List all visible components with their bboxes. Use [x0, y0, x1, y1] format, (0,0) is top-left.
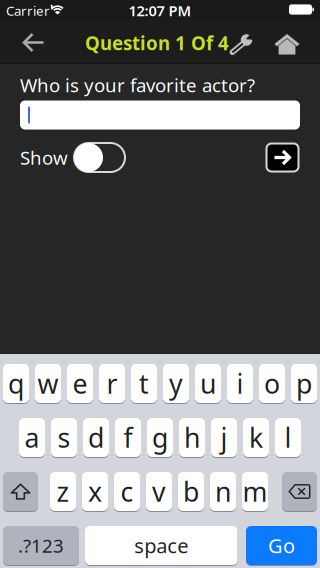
- button[interactable]: c: [114, 471, 140, 511]
- staticText: a: [24, 420, 39, 455]
- staticText: l: [284, 420, 291, 455]
- button[interactable]: Home: [269, 26, 305, 62]
- button[interactable]: t: [131, 363, 157, 403]
- button[interactable]: h: [179, 417, 205, 457]
- staticText: g: [152, 420, 168, 455]
- button[interactable]: n: [210, 471, 236, 511]
- staticText: u: [200, 366, 216, 401]
- staticText: Carrier: [6, 2, 50, 19]
- staticText: o: [264, 366, 280, 401]
- button[interactable]: m: [242, 471, 268, 511]
- staticText: z: [56, 474, 69, 509]
- button[interactable]: space: [85, 525, 237, 565]
- staticText: r: [106, 366, 117, 401]
- button[interactable]: q: [3, 363, 29, 403]
- button[interactable]: Show answer toggle: [73, 142, 126, 173]
- staticText: m: [242, 474, 267, 509]
- button[interactable]: u: [195, 363, 221, 403]
- staticText: w: [37, 366, 58, 401]
- button[interactable]: Go: [246, 525, 317, 565]
- button[interactable]: z: [50, 471, 76, 511]
- button[interactable]: y: [163, 363, 189, 403]
- staticText: e: [72, 366, 87, 401]
- button[interactable]: Answer text field: [20, 100, 300, 129]
- staticText: f: [123, 420, 132, 455]
- staticText: Show: [20, 145, 68, 170]
- button[interactable]: Settings: [225, 26, 259, 62]
- button[interactable]: a: [19, 417, 45, 457]
- button[interactable]: Delete: [282, 471, 317, 511]
- staticText: b: [183, 474, 199, 509]
- button[interactable]: x: [82, 471, 108, 511]
- staticText: p: [296, 366, 312, 401]
- button[interactable]: g: [147, 417, 173, 457]
- button[interactable]: w: [35, 363, 61, 403]
- staticText: k: [249, 420, 263, 455]
- staticText: q: [8, 366, 24, 401]
- button[interactable]: b: [178, 471, 204, 511]
- button[interactable]: v: [146, 471, 172, 511]
- button[interactable]: s: [51, 417, 77, 457]
- staticText: y: [169, 366, 183, 401]
- button[interactable]: j: [211, 417, 237, 457]
- staticText: h: [184, 420, 200, 455]
- staticText: t: [139, 366, 149, 401]
- staticText: Who is your favorite actor?: [20, 73, 255, 97]
- button[interactable]: o: [259, 363, 285, 403]
- button[interactable]: Back: [13, 22, 53, 62]
- button[interactable]: e: [67, 363, 93, 403]
- button[interactable]: i: [227, 363, 253, 403]
- button[interactable]: Shift: [3, 471, 38, 511]
- button[interactable]: Next question: [265, 142, 299, 172]
- button[interactable]: Numbers: [3, 525, 79, 565]
- staticText: x: [88, 474, 102, 509]
- button[interactable]: f: [115, 417, 141, 457]
- staticText: v: [152, 474, 166, 509]
- button[interactable]: l: [275, 417, 301, 457]
- staticText: space: [134, 532, 188, 559]
- button[interactable]: d: [83, 417, 109, 457]
- button[interactable]: r: [99, 363, 125, 403]
- staticText: c: [120, 474, 133, 509]
- staticText: i: [236, 366, 243, 401]
- button[interactable]: k: [243, 417, 269, 457]
- staticText: j: [220, 420, 227, 455]
- staticText: n: [215, 474, 231, 509]
- staticText: .?123: [18, 533, 64, 558]
- staticText: d: [88, 420, 104, 455]
- staticText: Question 1 Of 4: [85, 31, 229, 55]
- staticText: s: [57, 420, 70, 455]
- staticText: Go: [268, 532, 295, 559]
- button[interactable]: p: [291, 363, 317, 403]
- staticText: 12:07 PM: [128, 1, 191, 20]
